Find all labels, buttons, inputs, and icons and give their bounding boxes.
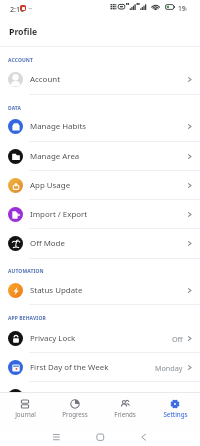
staticText: APP BEHAVIOR <box>8 315 46 322</box>
other: Open <box>186 364 193 371</box>
staticText: App Usage <box>30 180 71 191</box>
button[interactable]: Manage Area <box>0 142 200 171</box>
other: Open <box>186 335 193 342</box>
button[interactable]: Friends <box>100 399 150 418</box>
staticText: Monday <box>155 363 183 373</box>
button[interactable]: Import / Export <box>0 200 200 229</box>
button[interactable]: Theme <box>0 382 200 411</box>
staticText: Friends <box>114 410 136 418</box>
staticText: Theme <box>30 391 56 402</box>
button[interactable]: Status Update <box>0 276 200 305</box>
button[interactable]: Journal <box>0 399 50 418</box>
staticText: Profile <box>9 26 38 38</box>
staticText: AUTOMATION <box>8 268 44 275</box>
button[interactable]: First Day of the Week <box>0 353 200 382</box>
button[interactable]: Progress <box>50 399 100 418</box>
staticText: Status Update <box>30 285 83 296</box>
staticText: DATA <box>8 105 22 112</box>
other: Open <box>186 211 193 218</box>
button[interactable]: Account <box>0 65 200 94</box>
staticText: Progress <box>62 410 88 418</box>
staticText: First Day of the Week <box>30 362 109 373</box>
staticText: 2:10 <box>10 4 25 14</box>
staticText: Privacy Lock <box>30 333 76 344</box>
button[interactable]: Settings <box>150 399 200 418</box>
other: Open <box>186 287 193 294</box>
button[interactable]: Manage Habits <box>0 112 200 141</box>
other: Open <box>186 153 193 160</box>
staticText: 19 <box>178 4 186 13</box>
staticText: Settings <box>163 410 188 418</box>
staticText: Off Mode <box>30 238 65 249</box>
button[interactable]: App Usage <box>0 171 200 200</box>
other: Open <box>186 123 193 130</box>
staticText: System <box>158 392 183 402</box>
staticText: Manage Area <box>30 151 80 162</box>
staticText: Import / Export <box>30 209 88 220</box>
button[interactable]: Privacy Lock <box>0 324 200 353</box>
staticText: ACCOUNT <box>8 57 33 64</box>
other: Open <box>186 76 193 83</box>
other: Open <box>186 240 193 247</box>
staticText: Manage Habits <box>30 121 87 132</box>
button[interactable]: Off Mode <box>0 229 200 258</box>
staticText: Account <box>30 74 60 85</box>
staticText: Off <box>172 334 183 344</box>
staticText: % <box>183 5 188 12</box>
other: Open <box>186 182 193 189</box>
staticText: Journal <box>15 410 36 418</box>
